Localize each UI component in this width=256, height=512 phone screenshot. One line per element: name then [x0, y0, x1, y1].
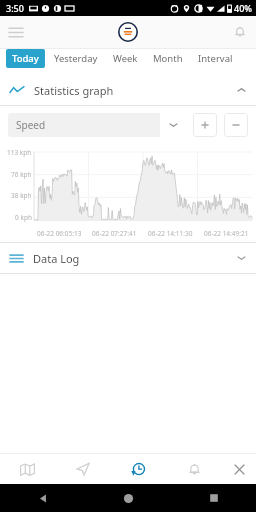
- button[interactable]: Notifications: [224, 16, 256, 48]
- button[interactable]: Open navigation menu: [0, 16, 32, 48]
- button[interactable]: History: [110, 454, 166, 484]
- staticText: 76 kph: [11, 170, 32, 179]
- button[interactable]: Today: [6, 49, 45, 68]
- button[interactable]: Send position: [55, 454, 110, 484]
- staticText: 38 kph: [11, 191, 32, 200]
- button[interactable]: Zoom out: [224, 113, 248, 137]
- staticText: Data Log: [33, 251, 80, 266]
- staticText: Month: [153, 52, 183, 65]
- staticText: 06-22 14:11:30: [148, 229, 193, 238]
- staticText: Today: [12, 52, 39, 65]
- button[interactable]: Map: [0, 454, 55, 484]
- button[interactable]: Speed: [8, 113, 186, 137]
- staticText: Speed: [16, 118, 46, 132]
- staticText: 06-22 07:27:41: [92, 229, 137, 238]
- button[interactable]: Zoom in: [193, 113, 217, 137]
- staticText: Statistics graph: [34, 83, 114, 98]
- staticText: 113 kph: [7, 148, 32, 157]
- staticText: 3:50: [6, 2, 24, 14]
- staticText: 40%: [234, 2, 252, 14]
- staticText: 06-22 06:05:13: [37, 229, 82, 238]
- button[interactable]: Yesterday: [48, 49, 104, 68]
- staticText: Yesterday: [54, 52, 98, 65]
- staticText: Interval: [198, 52, 233, 65]
- button[interactable]: Week: [107, 49, 144, 68]
- button[interactable]: Close: [222, 454, 256, 484]
- staticText: 0 kph: [15, 213, 32, 222]
- staticText: Week: [113, 52, 138, 65]
- staticText: 06-22 14:49:21: [204, 229, 249, 238]
- button[interactable]: Month: [147, 49, 189, 68]
- button[interactable]: Alerts: [166, 454, 222, 484]
- button[interactable]: Interval: [192, 49, 239, 68]
- button[interactable]: Data Log: [0, 243, 256, 273]
- button[interactable]: Statistics graph: [0, 75, 256, 105]
